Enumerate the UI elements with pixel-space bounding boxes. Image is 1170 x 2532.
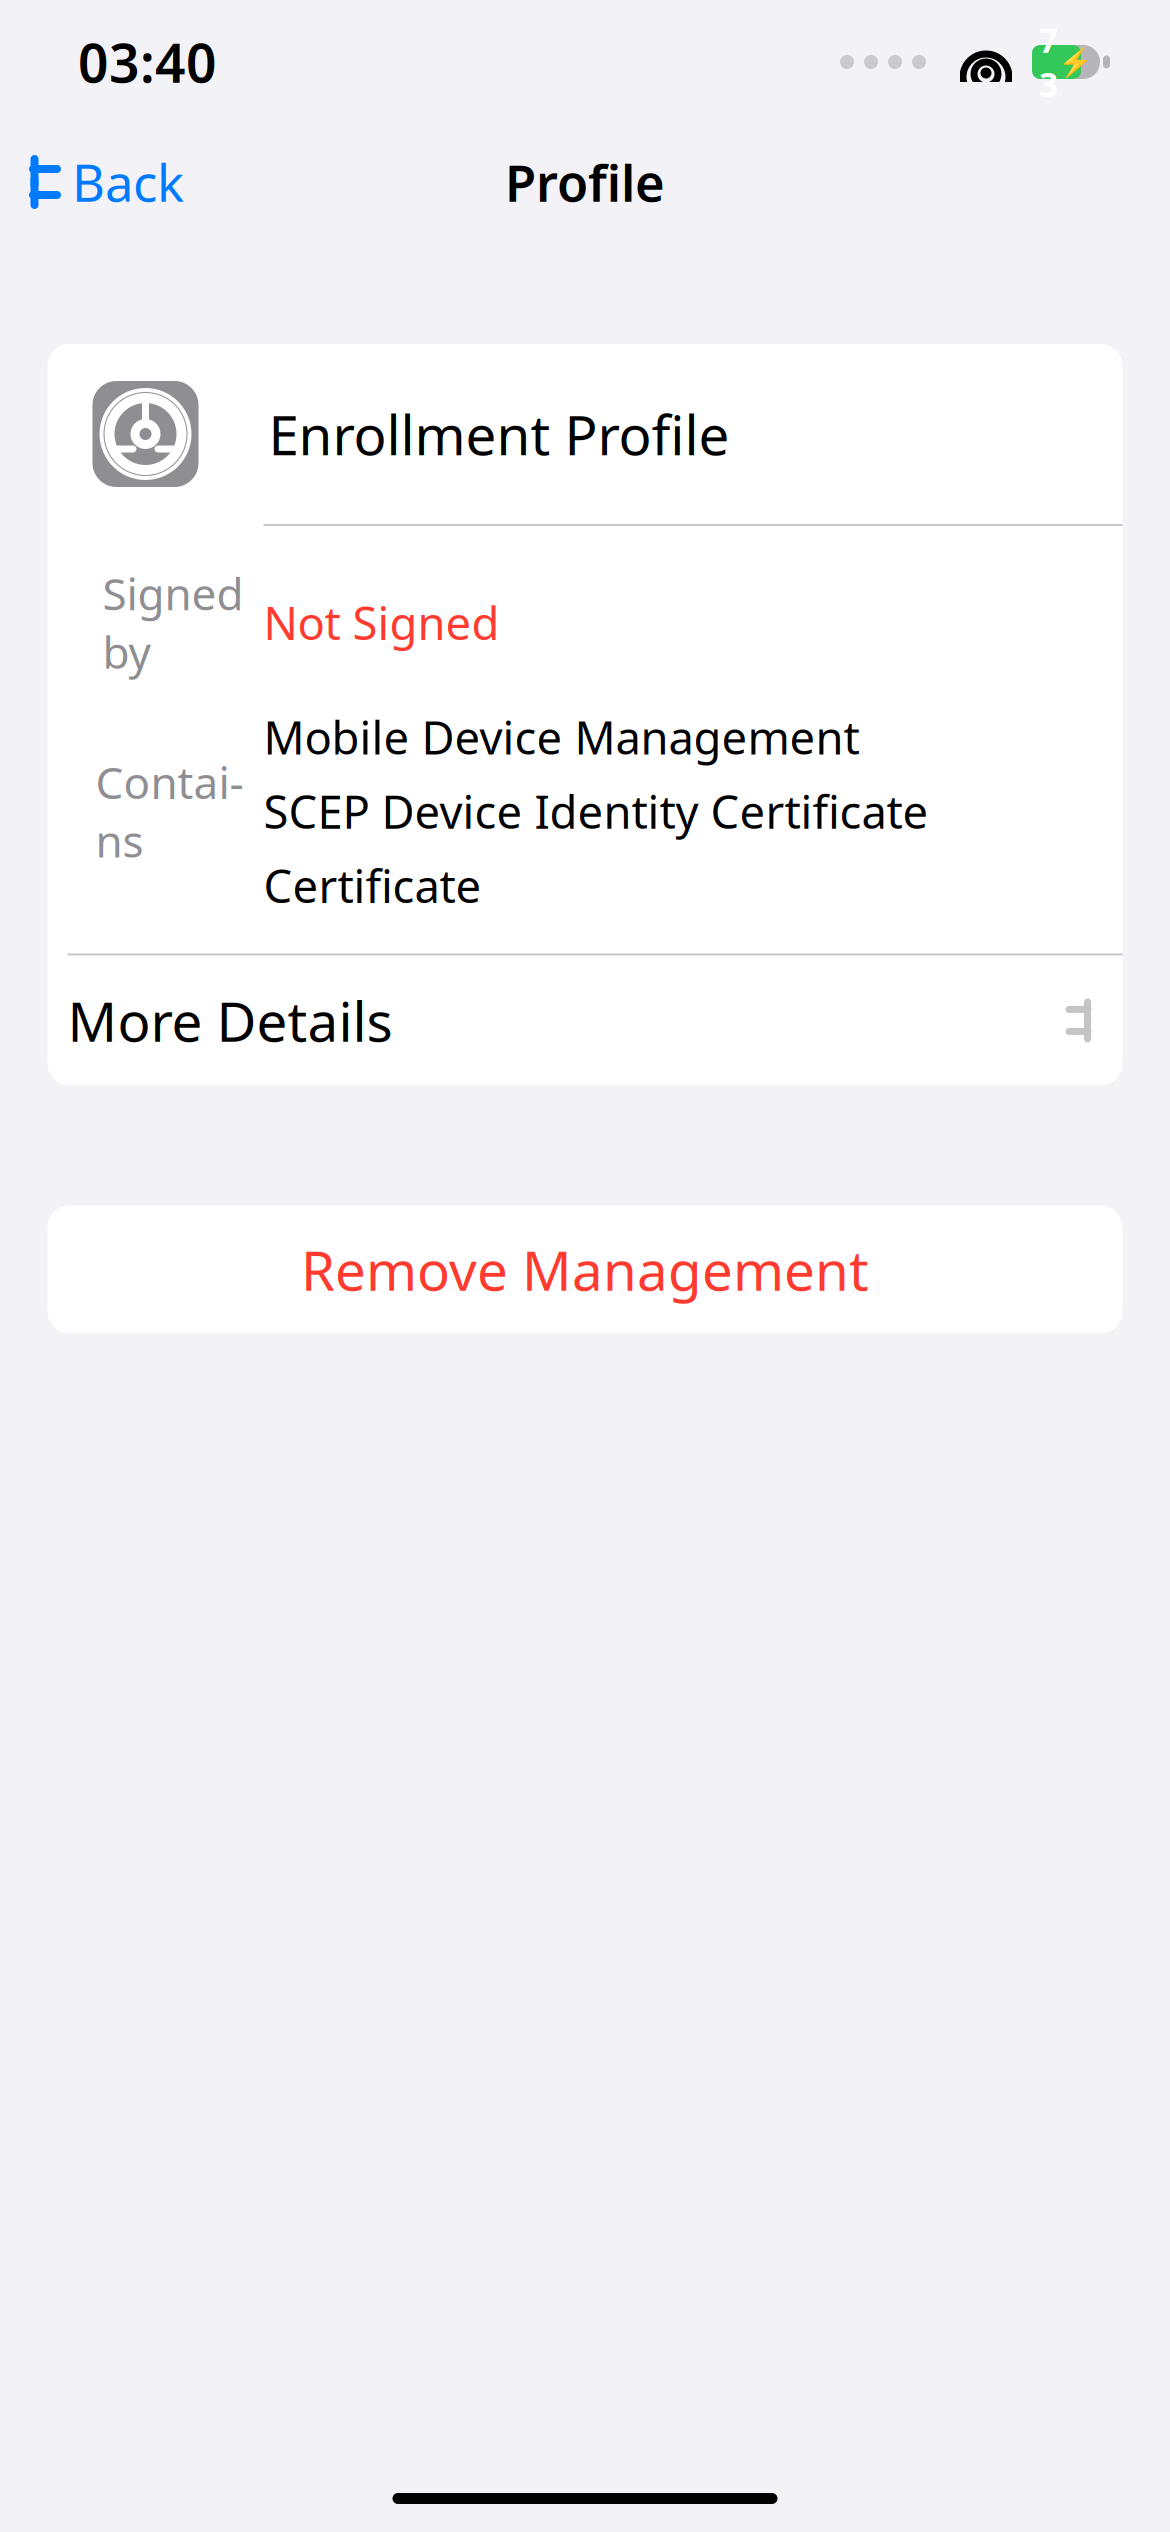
staticText: Contains <box>95 753 243 870</box>
staticText: Back <box>72 148 184 216</box>
button[interactable]: More Details <box>47 955 1122 1085</box>
staticText: ⚡ <box>1058 46 1093 78</box>
staticText: More Details <box>67 984 392 1057</box>
button[interactable]: Remove Management <box>47 1205 1122 1333</box>
staticText: Enrollment Profile <box>268 398 729 470</box>
staticText: 03:40 <box>78 27 217 97</box>
staticText: Certificate <box>263 855 481 915</box>
staticText: Not Signed <box>263 592 499 652</box>
staticText: Mobile Device Management <box>263 707 859 767</box>
staticText: Remove Management <box>301 1233 869 1306</box>
staticText: Signed by <box>102 564 243 681</box>
staticText: 73 <box>1039 18 1058 106</box>
staticText: Profile <box>505 148 665 216</box>
button[interactable]: Back <box>0 136 200 228</box>
staticText: SCEP Device Identity Certificate <box>263 781 928 841</box>
